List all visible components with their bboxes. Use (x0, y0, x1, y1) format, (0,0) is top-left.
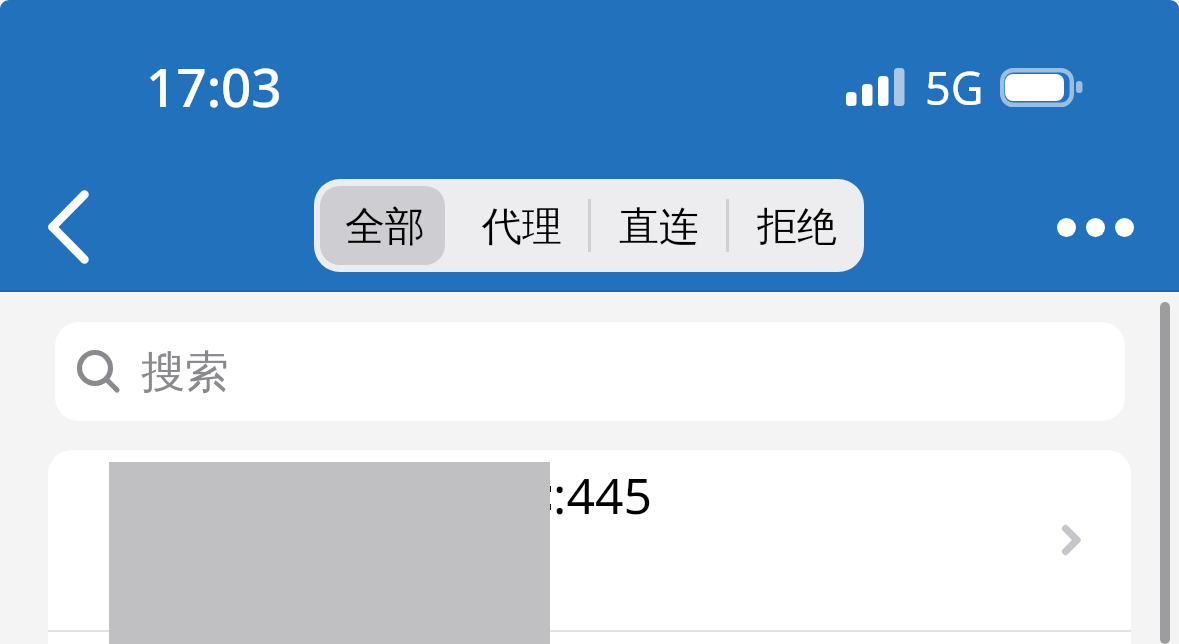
staticText: 直连 (619, 201, 699, 251)
button[interactable]: 代理 (451, 179, 588, 272)
staticText: :445 (553, 461, 653, 529)
button[interactable]: 搜索 (55, 322, 1125, 421)
button[interactable]: 拒绝 (726, 179, 864, 272)
staticText: 全部 (345, 201, 425, 251)
button[interactable] (48, 450, 1131, 631)
button[interactable]: Back (28, 187, 108, 267)
staticText: 搜索 (141, 345, 229, 400)
button[interactable]: 全部 (314, 179, 451, 272)
button[interactable]: 直连 (588, 179, 726, 272)
staticText: 17:03 (146, 50, 282, 122)
staticText: 代理 (482, 201, 562, 251)
staticText: 拒绝 (757, 201, 837, 251)
button[interactable]: More options (1031, 192, 1159, 262)
staticText: 5G (925, 57, 984, 118)
